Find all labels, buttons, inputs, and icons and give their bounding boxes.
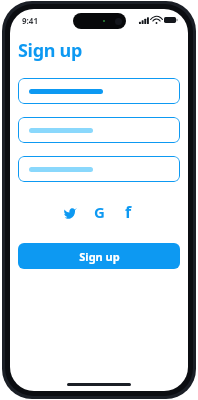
button[interactable]: Sign up with Twitter	[59, 201, 81, 223]
staticText: Sign up	[79, 249, 120, 264]
button[interactable]: Sign up with Google	[88, 201, 110, 223]
button[interactable]	[18, 156, 180, 182]
staticText: f	[125, 201, 132, 223]
button[interactable]: Sign up with Facebook	[117, 201, 139, 223]
button[interactable]: Sign up	[18, 243, 180, 269]
button[interactable]	[18, 117, 180, 143]
staticText: G	[94, 202, 105, 222]
staticText: 9:41	[22, 15, 38, 26]
button[interactable]	[18, 78, 180, 104]
staticText: Sign up	[18, 38, 83, 63]
